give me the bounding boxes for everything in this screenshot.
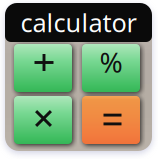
button[interactable]: Equals [82, 96, 140, 144]
button[interactable]: Plus [14, 44, 72, 92]
staticText: calculator [20, 6, 136, 39]
staticText: % [99, 43, 122, 81]
button[interactable]: Percent [82, 44, 140, 92]
button[interactable]: Multiply [14, 96, 72, 144]
